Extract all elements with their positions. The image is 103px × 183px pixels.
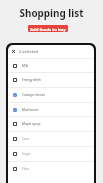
button[interactable]: Cottage cheese [8, 87, 94, 102]
staticText: 2 selected [19, 49, 38, 54]
button[interactable]: Sugar [8, 146, 94, 161]
button[interactable]: Close selection [12, 45, 94, 58]
staticText: Cottage cheese [22, 93, 46, 97]
button[interactable]: Mushroom [8, 102, 94, 117]
staticText: Energy drink [22, 78, 42, 82]
staticText: Maple syrup [22, 122, 41, 126]
button[interactable]: Milk [8, 58, 94, 73]
staticText: Sugar [22, 152, 31, 156]
staticText: Mushroom [22, 108, 39, 112]
staticText: Add foods to buy [30, 26, 66, 32]
button[interactable]: Maple syrup [8, 116, 94, 131]
staticText: Milk [22, 64, 29, 68]
staticText: Corn [22, 137, 30, 141]
button[interactable]: Corn [8, 131, 94, 146]
button[interactable]: Flour [8, 161, 94, 176]
staticText: Flour [22, 167, 30, 171]
button[interactable]: Energy drink [8, 72, 94, 87]
button[interactable]: Add foods to buy [30, 25, 66, 32]
staticText: Shopping list [0, 6, 103, 19]
